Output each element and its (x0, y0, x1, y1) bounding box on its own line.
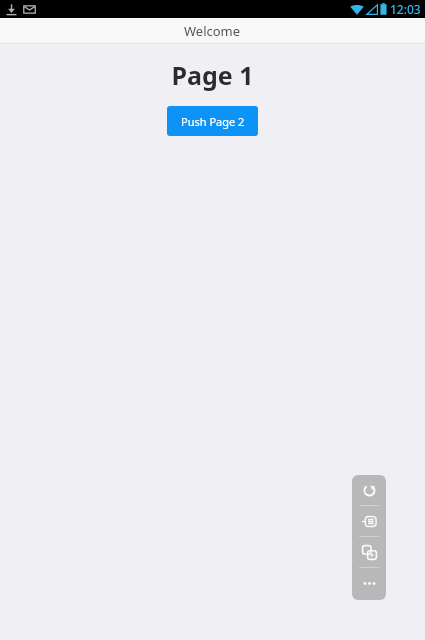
staticText: 12:03 (390, 1, 421, 17)
staticText: Welcome (184, 22, 241, 40)
button[interactable]: Inspect (352, 506, 386, 536)
staticText: Page 1 (0, 58, 425, 92)
button[interactable]: Screenshot (352, 537, 386, 567)
button[interactable]: Reload (352, 475, 386, 505)
staticText: Push Page 2 (181, 114, 245, 129)
button[interactable]: Push Page 2 (167, 106, 258, 136)
button[interactable]: More options (352, 568, 386, 598)
